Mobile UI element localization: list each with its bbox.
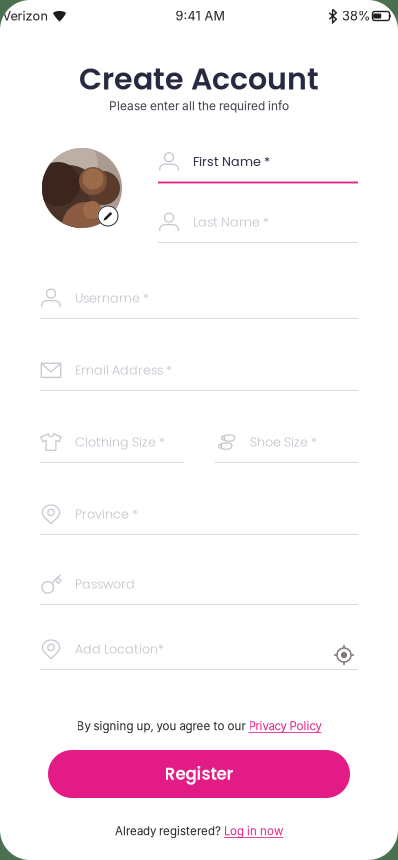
staticText: Privacy Policy xyxy=(248,719,321,733)
staticText: First Name * xyxy=(193,153,270,170)
staticText: Province * xyxy=(75,505,138,523)
staticText: Email Address * xyxy=(75,361,172,379)
button[interactable]: Use current location xyxy=(333,644,355,666)
staticText: Already registered? xyxy=(115,824,224,838)
staticText: Last Name * xyxy=(193,213,269,231)
staticText: Register xyxy=(164,762,233,786)
button[interactable]: Log in now xyxy=(224,824,283,838)
staticText: Please enter all the required info xyxy=(109,99,289,113)
staticText: Log in now xyxy=(224,824,283,838)
staticText: Clothing Size * xyxy=(75,433,165,451)
staticText: By signing up, you agree to our xyxy=(76,719,248,733)
button[interactable]: Privacy Policy xyxy=(248,719,321,733)
staticText: 9:41 AM xyxy=(175,8,224,24)
staticText: Username * xyxy=(75,289,149,307)
button[interactable]: Register xyxy=(48,750,350,798)
staticText: Verizon xyxy=(2,8,47,24)
staticText: Password xyxy=(75,575,135,593)
staticText: Add Location* xyxy=(75,640,164,658)
staticText: Shoe Size * xyxy=(250,433,317,451)
staticText: 38% xyxy=(342,8,370,24)
staticText: Create Account xyxy=(79,58,319,100)
button[interactable]: Edit profile photo xyxy=(97,205,118,226)
